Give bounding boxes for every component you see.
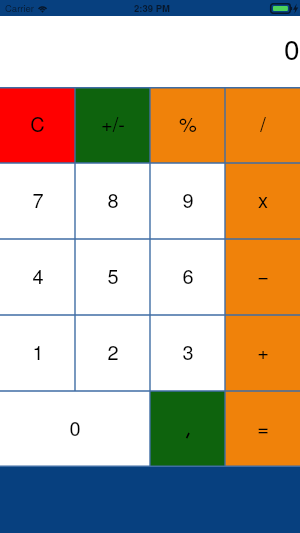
staticText: = — [257, 413, 269, 442]
button[interactable]: C — [0, 87, 75, 163]
button[interactable]: 0 — [0, 391, 150, 467]
staticText: 2 — [107, 337, 119, 366]
staticText: 1 — [32, 337, 44, 366]
staticText: C — [30, 109, 45, 138]
staticText: 0 — [284, 28, 300, 68]
button[interactable]: 5 — [75, 239, 150, 315]
staticText: % — [179, 109, 197, 138]
staticText: x — [258, 185, 268, 214]
staticText: 9 — [182, 185, 194, 214]
button[interactable]: + — [225, 315, 300, 391]
staticText: 6 — [182, 261, 194, 290]
staticText: 7 — [32, 185, 44, 214]
staticText: Carrier — [5, 1, 35, 15]
staticText: / — [260, 109, 266, 138]
staticText: 8 — [107, 185, 119, 214]
button[interactable]: % — [150, 87, 225, 163]
button[interactable]: +/- — [75, 87, 150, 163]
button[interactable]: 4 — [0, 239, 75, 315]
staticText: 2:39 PM — [134, 1, 170, 15]
button[interactable]: 2 — [75, 315, 150, 391]
staticText: +/- — [101, 109, 125, 138]
staticText: + — [257, 337, 269, 366]
button[interactable]: 3 — [150, 315, 225, 391]
button[interactable]: 7 — [0, 163, 75, 239]
button[interactable]: 1 — [0, 315, 75, 391]
button[interactable]: / — [225, 87, 300, 163]
staticText: 3 — [182, 337, 194, 366]
button[interactable]: = — [225, 391, 300, 467]
button[interactable]: x — [225, 163, 300, 239]
staticText: 5 — [107, 261, 119, 290]
staticText: 4 — [32, 261, 44, 290]
staticText: 0 — [69, 413, 81, 442]
button[interactable]: 6 — [150, 239, 225, 315]
staticText: − — [257, 261, 269, 290]
button[interactable]: 8 — [75, 163, 150, 239]
button[interactable]: 9 — [150, 163, 225, 239]
button[interactable] — [150, 391, 225, 467]
button[interactable]: − — [225, 239, 300, 315]
